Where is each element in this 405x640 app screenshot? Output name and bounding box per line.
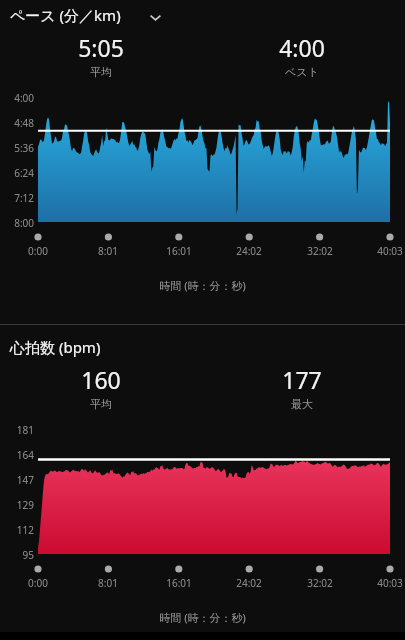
button[interactable]: Change metric [145, 7, 165, 27]
staticText: ペース (分／km) [10, 5, 121, 25]
staticText: ベスト [242, 65, 362, 79]
button[interactable]: 177 [242, 364, 362, 411]
staticText: 181 [0, 423, 34, 437]
staticText: 6:24 [0, 166, 34, 180]
staticText: 16:01 [155, 244, 203, 258]
button[interactable]: 4:00 [242, 32, 362, 79]
staticText: 24:02 [225, 576, 273, 590]
button[interactable]: 160 [41, 364, 161, 411]
staticText: 時間 (時：分：秒) [0, 610, 405, 625]
staticText: 164 [0, 448, 34, 462]
staticText: 40:03 [366, 244, 405, 258]
staticText: 平均 [41, 397, 161, 411]
staticText: 32:02 [296, 576, 344, 590]
button[interactable]: 5:05 [41, 32, 161, 79]
staticText: 129 [0, 498, 34, 512]
staticText: 16:01 [155, 576, 203, 590]
button[interactable]: ペース (分／km) [10, 5, 121, 25]
staticText: 最大 [242, 397, 362, 411]
staticText: 8:00 [0, 216, 34, 230]
staticText: 平均 [41, 65, 161, 79]
staticText: 5:36 [0, 141, 34, 155]
staticText: 4:00 [242, 32, 362, 63]
staticText: 時間 (時：分：秒) [0, 278, 405, 293]
staticText: 4:48 [0, 116, 34, 130]
staticText: 0:00 [14, 576, 62, 590]
staticText: 8:01 [84, 576, 132, 590]
staticText: 24:02 [225, 244, 273, 258]
staticText: 112 [0, 523, 34, 537]
staticText: 0:00 [14, 244, 62, 258]
staticText: 7:12 [0, 191, 34, 205]
staticText: 40:03 [366, 576, 405, 590]
staticText: 心拍数 (bpm) [10, 337, 101, 357]
staticText: 8:01 [84, 244, 132, 258]
staticText: 177 [242, 364, 362, 395]
staticText: 32:02 [296, 244, 344, 258]
staticText: 160 [41, 364, 161, 395]
staticText: 95 [0, 548, 34, 562]
button[interactable]: 心拍数 (bpm) [10, 337, 101, 357]
staticText: 4:00 [0, 91, 34, 105]
staticText: 147 [0, 473, 34, 487]
staticText: 5:05 [41, 32, 161, 63]
